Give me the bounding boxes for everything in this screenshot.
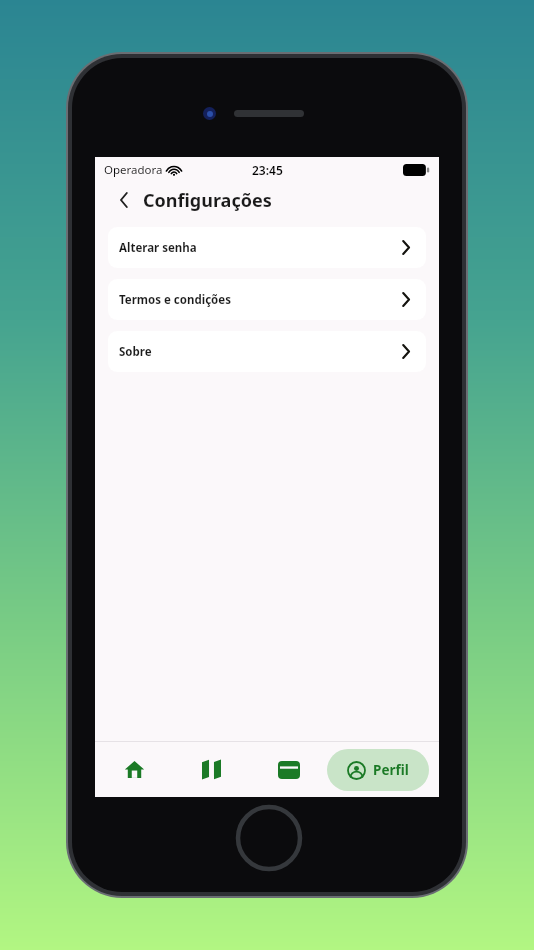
staticText: Alterar senha [119,240,197,256]
button[interactable]: Início [95,742,173,797]
staticText: Termos e condições [119,292,231,308]
button[interactable]: Mapa [173,742,250,797]
staticText: Operadora [104,162,163,178]
staticText: Configurações [143,188,272,213]
staticText: 23:45 [252,162,283,178]
button[interactable]: Carteira [250,742,327,797]
button[interactable]: Voltar [113,189,135,211]
button[interactable]: Alterar senha [108,227,426,268]
button[interactable]: Perfil [327,749,429,791]
staticText: Sobre [119,344,152,360]
button[interactable]: Termos e condições [108,279,426,320]
staticText: Perfil [373,761,409,779]
button[interactable]: Sobre [108,331,426,372]
